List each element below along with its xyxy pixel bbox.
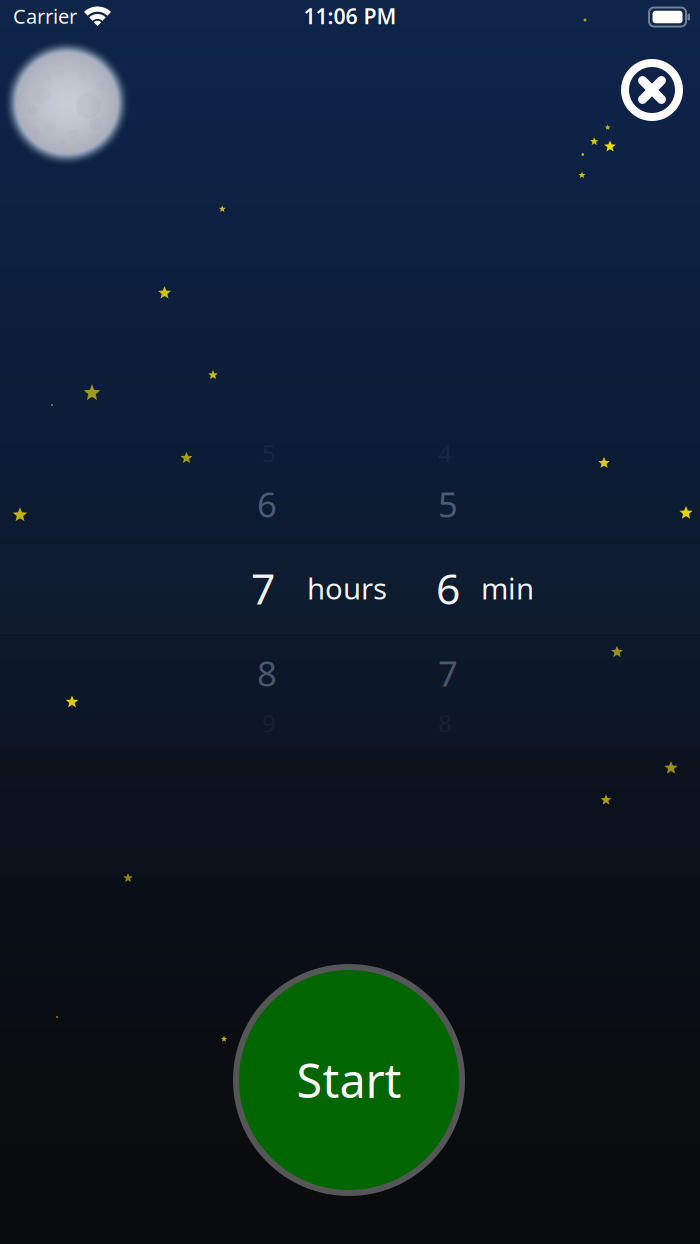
staticText: hours [307, 568, 387, 607]
staticText: 7 [251, 560, 275, 616]
staticText: 4 [438, 437, 452, 469]
staticText: Start [296, 1049, 401, 1111]
staticText: Carrier [13, 3, 77, 29]
staticText: 7 [438, 650, 458, 696]
staticText: 5 [438, 481, 458, 527]
staticText: min [481, 568, 534, 607]
staticText: 11:06 PM [303, 2, 396, 30]
button[interactable]: Start [234, 965, 464, 1195]
staticText: 5 [262, 437, 276, 469]
staticText: 6 [257, 481, 277, 527]
staticText: 6 [436, 560, 460, 616]
staticText: 9 [262, 707, 276, 739]
staticText: 8 [438, 707, 452, 739]
button[interactable]: Close [619, 57, 685, 123]
staticText: 8 [257, 650, 277, 696]
